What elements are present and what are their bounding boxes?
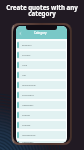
staticText: Change xyxy=(22,124,31,127)
button[interactable]: Business xyxy=(17,41,66,49)
staticText: Happiness xyxy=(22,104,34,107)
staticText: Love xyxy=(22,64,28,67)
staticText: Inspirational xyxy=(22,84,36,87)
button[interactable]: Friends xyxy=(17,111,66,119)
staticText: Motivational xyxy=(22,134,36,137)
staticText: Life xyxy=(22,74,26,77)
staticText: Philosophy xyxy=(22,94,34,97)
button[interactable]: Inspirational xyxy=(17,81,66,89)
button[interactable]: Philosophy xyxy=(17,91,66,99)
button[interactable]: Happiness xyxy=(17,101,66,109)
button[interactable]: Love xyxy=(17,61,66,69)
button[interactable]: Happiness xyxy=(17,141,66,143)
button[interactable]: Success xyxy=(17,51,66,59)
button[interactable]: Change xyxy=(17,121,66,129)
button[interactable]: Motivational xyxy=(17,131,66,139)
staticText: Success xyxy=(22,54,31,57)
staticText: Category xyxy=(34,31,47,35)
staticText: Friends xyxy=(22,114,30,117)
button[interactable]: Back xyxy=(19,32,22,35)
button[interactable]: Life xyxy=(17,71,66,79)
staticText: Create quotes with any category xyxy=(0,3,84,18)
staticText: Happiness xyxy=(22,141,34,143)
staticText: Business xyxy=(22,44,32,47)
